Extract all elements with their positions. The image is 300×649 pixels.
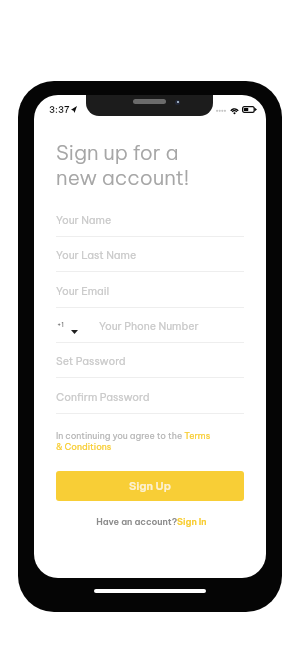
staticText: In continuing you agree to the Terms & C… (56, 430, 211, 452)
button[interactable] (56, 247, 244, 272)
button[interactable] (56, 318, 244, 343)
staticText: Confirm Password (56, 390, 150, 403)
staticText: Have an account?Sign In (96, 516, 207, 527)
staticText: Sign up for a new account! (56, 139, 190, 190)
button[interactable] (56, 212, 244, 237)
button[interactable]: Have an account?Sign In (89, 513, 213, 529)
staticText: Your Last Name (56, 248, 137, 261)
staticText: Set Password (56, 354, 126, 367)
staticText: Your Email (56, 284, 110, 297)
button[interactable] (56, 353, 244, 378)
button[interactable]: Sign Up (56, 471, 244, 501)
button[interactable] (56, 389, 244, 414)
staticText: 3:37 (49, 104, 70, 115)
button[interactable] (56, 283, 244, 308)
staticText: Your Phone Number (99, 319, 199, 332)
staticText: Your Name (56, 213, 112, 226)
other: Location active (71, 106, 77, 113)
staticText: +1 (57, 320, 64, 329)
staticText: Sign Up (129, 479, 171, 493)
